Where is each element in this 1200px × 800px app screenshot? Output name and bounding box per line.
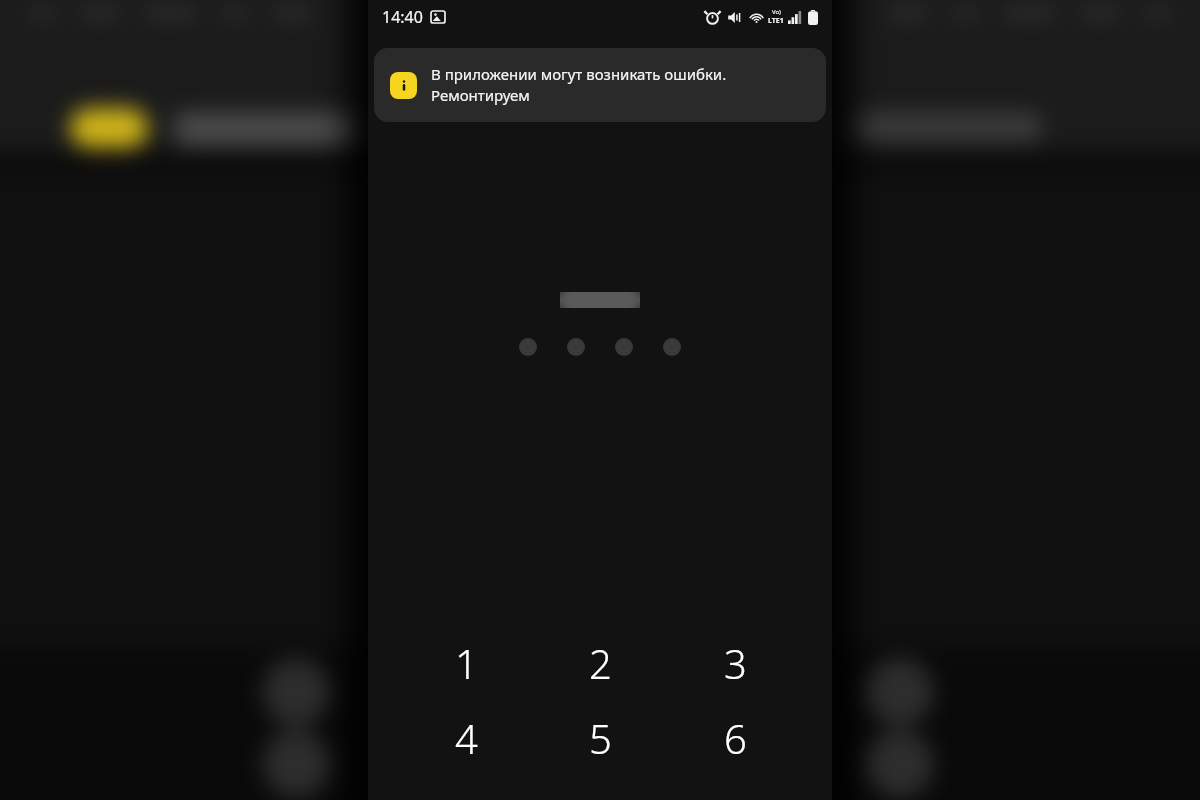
staticText: 1 — [455, 636, 478, 690]
staticText: 6 — [724, 711, 747, 765]
staticText: Vo) — [772, 8, 781, 16]
button[interactable]: 4 — [429, 701, 503, 775]
button[interactable]: 2 — [563, 626, 637, 700]
staticText: LTE1 — [768, 16, 784, 26]
staticText: 14:40 — [382, 6, 423, 28]
staticText: 2 — [589, 636, 612, 690]
button[interactable]: 1 — [429, 626, 503, 700]
staticText: 3 — [724, 636, 747, 690]
button[interactable]: 3 — [698, 626, 772, 700]
staticText: В приложении могут возникать ошибки. Рем… — [431, 64, 727, 106]
button[interactable]: 6 — [698, 701, 772, 775]
button[interactable]: 5 — [563, 701, 637, 775]
staticText: 5 — [589, 711, 612, 765]
button[interactable]: В приложении могут возникать ошибки. Рем… — [374, 48, 826, 122]
staticText: 4 — [455, 711, 478, 765]
